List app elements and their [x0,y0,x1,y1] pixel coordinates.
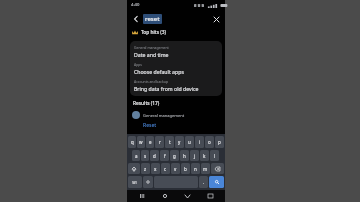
staticText: Top hits (3) [141,29,166,36]
button[interactable]: g [170,150,179,161]
staticText: i [199,139,201,145]
staticText: b [184,166,187,172]
button[interactable]: Hide keyboard [203,190,217,202]
button[interactable]: Top hits (3) [132,27,220,38]
staticText: Results (17) [133,100,160,107]
staticText: 4:40 [131,2,140,8]
staticText: x [154,166,157,172]
button[interactable]: Backspace [211,163,224,174]
button[interactable]: t [165,136,174,148]
button[interactable]: y [175,136,184,148]
staticText: e [149,139,152,145]
button[interactable]: f [160,150,169,161]
staticText: o [208,139,211,145]
button[interactable]: General management [130,111,222,119]
button[interactable]: Settings [143,176,153,188]
staticText: a [135,153,138,159]
staticText: u [188,139,191,145]
button[interactable]: k [200,150,209,161]
button[interactable]: Search [209,176,224,188]
button[interactable]: reset [145,15,160,23]
button[interactable]: c [161,163,170,174]
button[interactable]: w [137,136,145,148]
staticText: z [144,166,147,172]
staticText: v [174,166,177,172]
button[interactable]: Clear search [210,13,222,25]
button[interactable]: p [215,136,224,148]
button[interactable]: o [205,136,214,148]
staticText: General management [143,113,185,118]
staticText: h [183,153,186,159]
button[interactable]: r [155,136,164,148]
button[interactable]: v [171,163,180,174]
button[interactable]: e [146,136,154,148]
staticText: !#1 [132,180,138,185]
staticText: l [214,153,216,159]
button[interactable]: n [191,163,200,174]
staticText: p [218,139,221,145]
staticText: q [131,139,134,145]
staticText: Bring data from old device [134,85,199,92]
staticText: Choose default apps [134,68,184,75]
staticText: s [144,153,147,159]
button[interactable]: General management [130,43,222,60]
button[interactable]: a [132,150,140,161]
button[interactable]: Recents [135,190,149,202]
button[interactable]: . [199,176,208,188]
button[interactable]: Back [130,13,142,25]
staticText: . [203,179,205,185]
staticText: k [203,153,206,159]
button[interactable]: q [128,136,136,148]
button[interactable]: Shift [128,163,140,174]
button[interactable]: !#1 [128,176,142,188]
button[interactable]: b [181,163,190,174]
staticText: r [159,139,161,145]
button[interactable]: m [201,163,210,174]
staticText: d [153,153,156,159]
staticText: Accounts and backup [134,79,168,84]
button[interactable]: x [151,163,160,174]
button[interactable]: d [150,150,159,161]
button[interactable]: Back [180,190,194,202]
button[interactable]: Home [158,190,172,202]
staticText: Date and time [134,51,169,58]
staticText: General management [134,45,169,50]
button[interactable]: j [190,150,199,161]
staticText: Apps [134,62,142,67]
button[interactable]: Accounts and backup [130,77,222,94]
staticText: t [169,139,171,145]
staticText: y [178,139,181,145]
button[interactable]: u [185,136,194,148]
staticText: j [194,153,196,159]
staticText: g [173,153,176,159]
staticText: m [203,166,208,172]
staticText: w [139,139,143,145]
button[interactable]: h [180,150,189,161]
button[interactable]: i [195,136,204,148]
staticText: reset [145,15,160,23]
staticText: n [194,166,197,172]
button[interactable]: Reset [143,122,157,129]
button[interactable]: l [210,150,219,161]
button[interactable]: Apps [130,60,222,77]
button[interactable]: z [141,163,150,174]
staticText: c [164,166,167,172]
button[interactable]: s [141,150,149,161]
staticText: f [164,153,166,159]
